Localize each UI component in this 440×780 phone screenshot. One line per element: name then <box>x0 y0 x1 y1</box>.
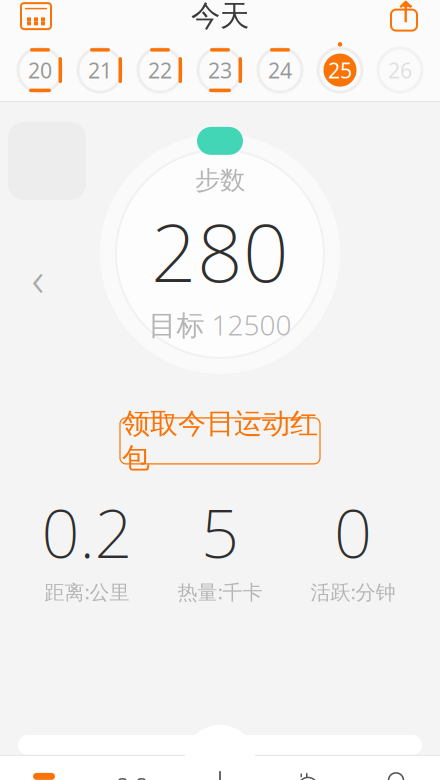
button[interactable]: 22 <box>136 42 184 98</box>
button[interactable]: Home <box>0 755 88 780</box>
button[interactable]: 领取今日运动红包 <box>120 418 320 464</box>
button[interactable]: 21 <box>76 42 124 98</box>
staticText: 22 <box>148 56 172 84</box>
staticText: 活跃:分钟 <box>310 578 395 605</box>
button[interactable]: Discover <box>264 755 352 780</box>
button[interactable]: Workouts <box>88 755 176 780</box>
staticText: 0 <box>334 488 372 576</box>
staticText: 26 <box>388 56 412 84</box>
staticText: 热量:千卡 <box>177 578 262 605</box>
staticText: ↑ <box>393 0 418 29</box>
button[interactable]: Previous day <box>16 256 60 300</box>
staticText: 23 <box>208 56 232 84</box>
staticText: 20 <box>28 56 52 84</box>
staticText: 0.2 <box>41 488 132 576</box>
staticText: 21 <box>88 56 112 84</box>
button[interactable]: Add <box>176 755 264 780</box>
button[interactable]: 25 <box>316 42 364 98</box>
staticText: 25 <box>328 56 352 84</box>
staticText: 目标 12500 <box>148 306 291 343</box>
button[interactable]: 24 <box>256 42 304 98</box>
button[interactable]: Calendar <box>14 0 58 38</box>
button[interactable]: Profile <box>352 755 440 780</box>
staticText: 步数 <box>195 165 245 196</box>
staticText: 280 <box>151 198 289 304</box>
button[interactable]: 20 <box>16 42 64 98</box>
button[interactable]: 26 <box>376 42 424 98</box>
staticText: 24 <box>268 56 292 84</box>
staticText: 距离:公里 <box>44 578 129 605</box>
staticText: 5 <box>201 488 239 576</box>
staticText: ‹ <box>31 246 44 310</box>
staticText: 今天 <box>191 0 249 34</box>
staticText: 领取今日运动红包 <box>122 406 318 475</box>
button[interactable]: 23 <box>196 42 244 98</box>
button[interactable]: Share <box>382 0 426 38</box>
